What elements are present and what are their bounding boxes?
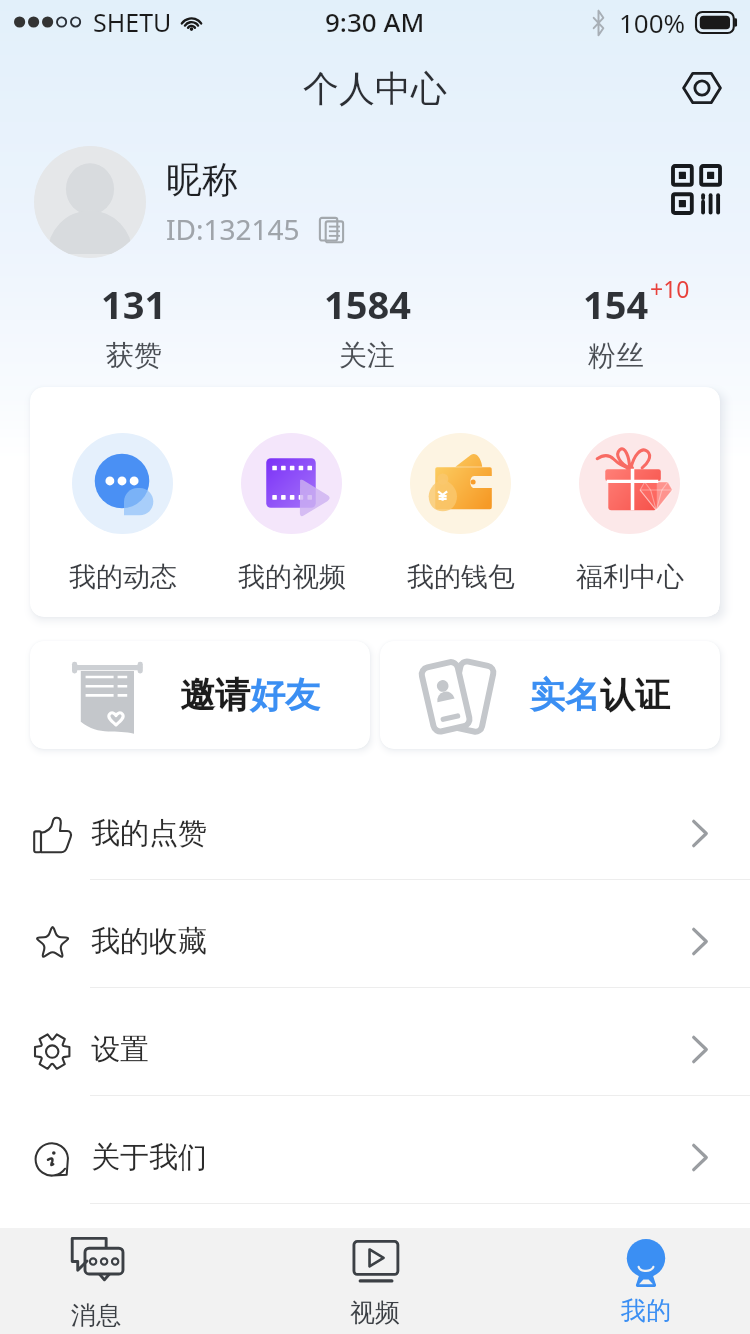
staticText: 个人中心	[303, 66, 447, 111]
staticText: 消息	[71, 1300, 121, 1331]
staticText: 邀请	[180, 673, 250, 717]
staticText: 好友	[250, 673, 320, 717]
staticText: 关于我们	[91, 1139, 207, 1176]
staticText: 我的钱包	[407, 560, 515, 594]
staticText: 100%	[619, 5, 686, 40]
staticText: 我的点赞	[91, 815, 207, 852]
button[interactable]: 我的	[576, 1228, 716, 1334]
button[interactable]: 我的钱包	[376, 387, 545, 617]
button[interactable]: 我的视频	[207, 387, 376, 617]
staticText: 设置	[91, 1031, 149, 1068]
staticText: +10	[650, 273, 690, 304]
button[interactable]: Copy ID	[317, 215, 346, 244]
button[interactable]: 我的点赞	[0, 772, 750, 880]
staticText: ID:132145	[166, 210, 300, 248]
button[interactable]: 消息	[26, 1228, 166, 1334]
button[interactable]: 福利中心	[545, 387, 714, 617]
button[interactable]: 实名	[380, 641, 720, 749]
staticText: 9:30 AM	[325, 4, 425, 39]
button[interactable]: 131	[67, 272, 201, 378]
staticText: 视频	[350, 1297, 400, 1328]
button[interactable]: QR code	[664, 157, 728, 221]
staticText: SHETU	[93, 5, 172, 39]
staticText: 我的动态	[69, 560, 177, 594]
staticText: 认证	[600, 673, 670, 717]
button[interactable]: Settings	[674, 60, 730, 116]
button[interactable]: 我的动态	[38, 387, 207, 617]
staticText: 实名	[530, 673, 600, 717]
staticText: 131	[101, 278, 167, 330]
staticText: 我的收藏	[91, 923, 207, 960]
button[interactable]: 1584	[287, 272, 447, 378]
button[interactable]	[34, 146, 146, 258]
button[interactable]: 视频	[305, 1228, 445, 1334]
button[interactable]: 设置	[0, 988, 750, 1096]
button[interactable]: 邀请	[30, 641, 370, 749]
staticText: 1584	[324, 278, 411, 330]
staticText: 获赞	[106, 338, 162, 373]
button[interactable]: 关于我们	[0, 1096, 750, 1204]
staticText: 粉丝	[588, 338, 644, 373]
staticText: 我的	[621, 1295, 671, 1326]
button[interactable]: 我的收藏	[0, 880, 750, 988]
staticText: 昵称	[166, 157, 238, 202]
button[interactable]: 154	[536, 272, 696, 378]
staticText: 福利中心	[576, 560, 684, 594]
staticText: 我的视频	[238, 560, 346, 594]
staticText: 关注	[339, 338, 395, 373]
staticText: 154	[583, 278, 649, 330]
